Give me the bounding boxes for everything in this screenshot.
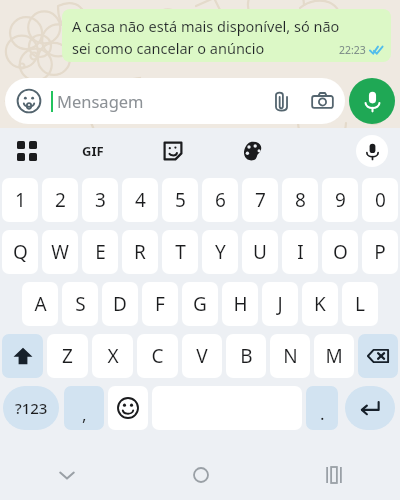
staticText: , (82, 403, 87, 426)
button[interactable]: Emoji (108, 386, 148, 430)
staticText: 22:23 (339, 43, 366, 57)
button[interactable]: Emoji and stickers (5, 78, 345, 124)
button[interactable]: C (137, 334, 178, 378)
button[interactable]: Recent apps (267, 450, 400, 500)
staticText: A (34, 291, 47, 317)
button[interactable]: F (142, 282, 178, 326)
button[interactable]: Voice input (356, 135, 388, 167)
button[interactable]: 1 (2, 178, 38, 222)
staticText: 5 (175, 187, 186, 213)
staticText: Z (62, 343, 73, 369)
staticText: D (113, 291, 127, 317)
button[interactable]: Stickers (133, 128, 213, 174)
button[interactable]: Shift (2, 334, 43, 378)
button[interactable]: Emoji and stickers (16, 88, 42, 114)
staticText: sei como cancelar o anúncio (72, 38, 265, 58)
staticText: 0 (375, 187, 386, 213)
button[interactable]: A (22, 282, 58, 326)
button[interactable]: Enter (345, 386, 395, 430)
button[interactable]: H (222, 282, 258, 326)
staticText: F (155, 291, 165, 317)
button[interactable]: 5 (162, 178, 198, 222)
button[interactable]: D (102, 282, 138, 326)
staticText: Mensagem (57, 90, 144, 112)
button[interactable]: U (242, 230, 278, 274)
button[interactable]: Themes (213, 128, 293, 174)
staticText: 2 (55, 187, 66, 213)
button[interactable]: W (42, 230, 78, 274)
staticText: 1 (15, 187, 26, 213)
staticText: Y (215, 239, 226, 265)
button[interactable]: 3 (82, 178, 118, 222)
staticText: E (95, 239, 106, 265)
button[interactable]: V (182, 334, 222, 378)
button[interactable]: 7 (242, 178, 278, 222)
staticText: X (107, 343, 119, 369)
staticText: H (233, 291, 248, 317)
button[interactable]: K (302, 282, 338, 326)
button[interactable]: R (122, 230, 158, 274)
button[interactable]: O (322, 230, 358, 274)
button[interactable]: 9 (322, 178, 358, 222)
staticText: L (355, 291, 365, 317)
staticText: 8 (295, 187, 306, 213)
staticText: G (193, 291, 207, 317)
staticText: A casa não está mais disponível, só não (72, 16, 340, 36)
button[interactable]: 2 (42, 178, 78, 222)
staticText: W (51, 239, 69, 265)
button[interactable]: Camera (311, 90, 334, 113)
button[interactable]: Z (47, 334, 88, 378)
button[interactable]: GIF (53, 128, 133, 174)
button[interactable]: Apps (0, 128, 53, 174)
button[interactable]: Home (134, 450, 267, 500)
button[interactable]: Q (2, 230, 38, 274)
button[interactable]: I (282, 230, 318, 274)
button[interactable]: A casa não está mais disponível, só não (62, 9, 391, 62)
button[interactable]: M (314, 334, 354, 378)
button[interactable]: G (182, 282, 218, 326)
button[interactable]: J (262, 282, 298, 326)
button[interactable]: P (362, 230, 398, 274)
staticText: R (134, 239, 146, 265)
button[interactable]: Attach (270, 90, 293, 113)
staticText: T (175, 239, 186, 265)
staticText: 4 (135, 187, 146, 213)
staticText: . (320, 402, 325, 425)
button[interactable]: 0 (362, 178, 398, 222)
staticText: ?123 (15, 398, 48, 418)
button[interactable]: Hide keyboard (0, 450, 134, 500)
staticText: I (297, 239, 304, 265)
staticText: S (75, 291, 86, 317)
button[interactable]: L (342, 282, 378, 326)
staticText: GIF (82, 142, 104, 160)
button[interactable]: 8 (282, 178, 318, 222)
button[interactable]: E (82, 230, 118, 274)
staticText: 7 (255, 187, 266, 213)
staticText: 6 (215, 187, 226, 213)
button[interactable]: X (92, 334, 133, 378)
button[interactable]: S (62, 282, 98, 326)
button[interactable]: . (306, 386, 338, 430)
staticText: 3 (95, 187, 106, 213)
button[interactable]: Record voice message (349, 78, 395, 124)
staticText: P (374, 239, 386, 265)
button[interactable]: Backspace (358, 334, 398, 378)
button[interactable]: N (270, 334, 310, 378)
button[interactable]: Y (202, 230, 238, 274)
staticText: U (253, 239, 267, 265)
staticText: M (325, 343, 343, 369)
staticText: 9 (335, 187, 346, 213)
button[interactable]: T (162, 230, 198, 274)
button[interactable]: 6 (202, 178, 238, 222)
staticText: B (240, 343, 253, 369)
staticText: K (314, 291, 326, 317)
button[interactable]: , (64, 386, 104, 430)
button[interactable]: 4 (122, 178, 158, 222)
staticText: O (333, 239, 348, 265)
staticText: J (277, 291, 283, 317)
staticText: C (151, 343, 164, 369)
button[interactable]: ?123 (3, 386, 59, 430)
button[interactable]: B (226, 334, 266, 378)
staticText: V (196, 343, 208, 369)
